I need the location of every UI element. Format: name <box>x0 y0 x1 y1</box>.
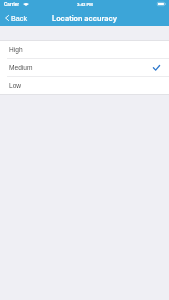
button[interactable]: Medium <box>0 59 169 76</box>
staticText: Medium <box>9 64 33 71</box>
button[interactable]: High <box>0 41 169 58</box>
button[interactable]: Back <box>0 11 33 25</box>
staticText: Low <box>9 82 22 89</box>
staticText: High <box>9 46 23 53</box>
button[interactable]: Low <box>0 77 169 94</box>
staticText: Back <box>11 14 27 22</box>
staticText: Location accuracy <box>52 14 117 23</box>
other: Selected <box>153 65 160 71</box>
staticText: 3:43 PM <box>77 2 93 7</box>
staticText: Carrier <box>4 2 20 7</box>
